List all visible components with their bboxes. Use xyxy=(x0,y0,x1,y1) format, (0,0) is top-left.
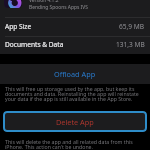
button[interactable]: Version 4.1.2 xyxy=(0,0,150,17)
button[interactable]: Offload App xyxy=(0,64,150,84)
staticText: Version 4.1.2 xyxy=(29,0,59,4)
staticText: 65,9 MB xyxy=(119,22,145,31)
button[interactable]: Documents & Data xyxy=(5,37,145,54)
staticText: Bending Spoons Apps IVS xyxy=(29,4,88,11)
staticText: Delete App xyxy=(56,117,94,127)
staticText: This will free up storage used by the ap… xyxy=(5,85,146,103)
staticText: 131,3 MB xyxy=(116,40,145,49)
button[interactable]: Delete App xyxy=(3,111,147,132)
staticText: This will delete the app and all related… xyxy=(5,138,146,150)
button[interactable]: App Size xyxy=(5,18,145,36)
staticText: App Size xyxy=(5,22,32,31)
staticText: Documents & Data xyxy=(5,40,64,49)
staticText: Offload App xyxy=(54,69,96,79)
